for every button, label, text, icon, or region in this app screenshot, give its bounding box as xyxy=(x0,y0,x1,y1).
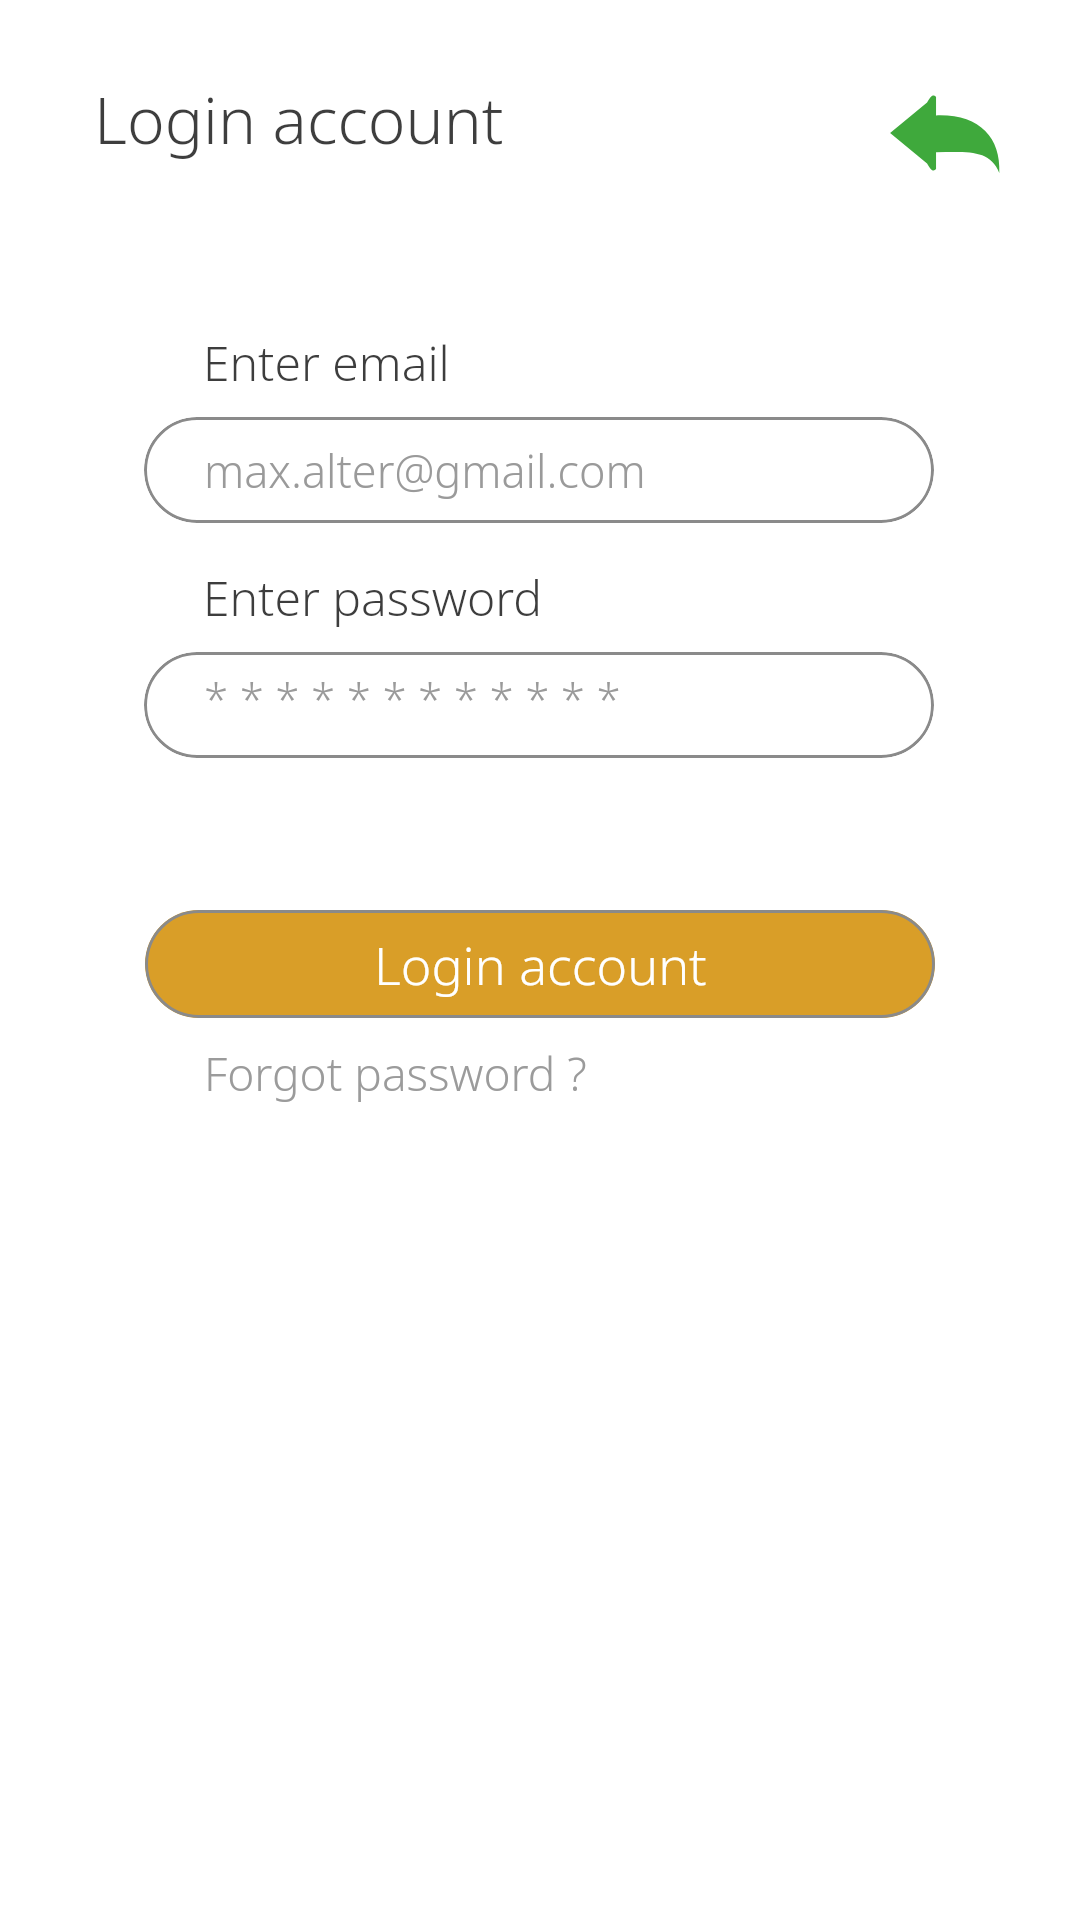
staticText: Enter password xyxy=(203,565,543,630)
button[interactable]: Login account xyxy=(145,910,935,1018)
staticText: Login account xyxy=(94,76,504,163)
staticText: max.alter@gmail.com xyxy=(204,440,646,501)
button[interactable]: Back xyxy=(874,78,1016,188)
staticText: * * * * * * * * * * * * xyxy=(204,669,621,729)
button[interactable]: Password input xyxy=(144,652,934,758)
staticText: Login account xyxy=(374,929,707,1000)
button[interactable]: Email input xyxy=(144,417,934,523)
staticText: Enter email xyxy=(203,330,450,395)
button[interactable]: Forgot password ? xyxy=(200,1036,591,1111)
staticText: Forgot password ? xyxy=(204,1042,587,1105)
